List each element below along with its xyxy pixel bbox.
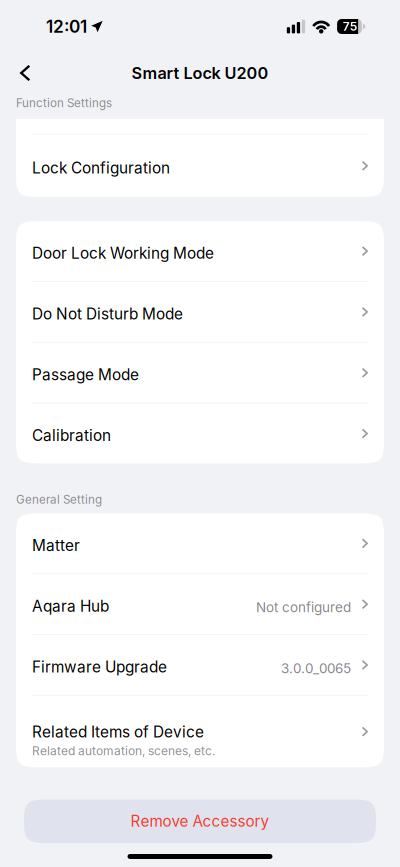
button[interactable]: Firmware Upgrade — [16, 635, 384, 695]
staticText: Firmware Upgrade — [32, 658, 167, 676]
button[interactable]: Aqara Hub — [16, 574, 384, 634]
staticText: 3.0.0_0065 — [281, 660, 351, 676]
staticText: Remove Accessory — [130, 812, 269, 830]
staticText: Calibration — [32, 426, 111, 445]
staticText: Passage Mode — [32, 365, 139, 384]
staticText: Function Settings — [16, 96, 112, 110]
staticText: Lock Configuration — [32, 159, 170, 177]
staticText: Related Items of Device — [32, 723, 204, 741]
button[interactable]: Lock Configuration — [16, 135, 384, 197]
button[interactable]: Calibration — [16, 404, 384, 463]
button[interactable]: Do Not Disturb Mode — [16, 282, 384, 342]
button[interactable]: Door Lock Working Mode — [16, 221, 384, 281]
staticText: Not configured — [256, 599, 351, 616]
staticText: Matter — [32, 536, 80, 555]
staticText: 75 — [343, 19, 358, 34]
staticText: 12:01 — [46, 16, 87, 37]
button[interactable]: Back — [0, 53, 42, 93]
button[interactable]: Matter — [16, 513, 384, 573]
staticText: Door Lock Working Mode — [32, 244, 214, 262]
button[interactable]: Passage Mode — [16, 343, 384, 403]
button[interactable]: Related Items of Device — [16, 696, 384, 767]
staticText: Do Not Disturb Mode — [32, 305, 183, 323]
staticText: Smart Lock U200 — [131, 63, 268, 83]
staticText: General Setting — [16, 492, 102, 506]
staticText: Aqara Hub — [32, 597, 109, 615]
staticText: Related automation, scenes, etc. — [32, 744, 215, 758]
button[interactable]: Remove Accessory — [24, 799, 376, 843]
